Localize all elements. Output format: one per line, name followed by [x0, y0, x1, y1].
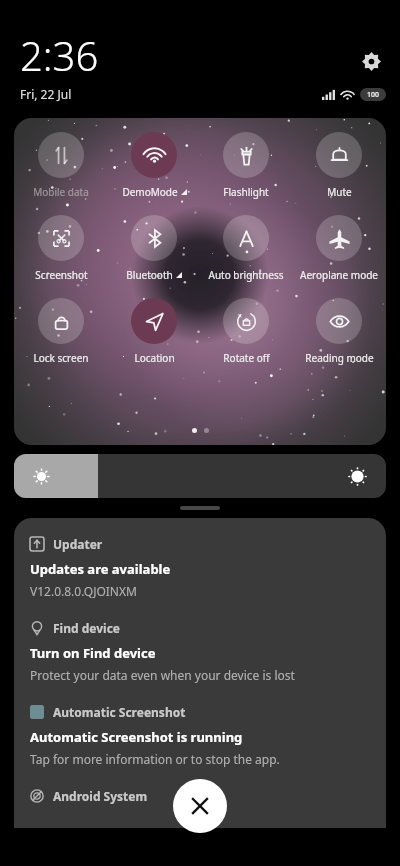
staticText: DemoMode: [122, 185, 178, 199]
button[interactable]: Mute: [294, 132, 384, 199]
button[interactable]: Auto brightness: [201, 215, 291, 282]
staticText: Find device: [53, 620, 120, 636]
button[interactable]: Close: [173, 779, 227, 833]
staticText: Automatic Screenshot: [53, 704, 186, 720]
button[interactable]: Reading mode: [294, 298, 384, 365]
staticText: Turn on Find device: [30, 644, 156, 662]
staticText: Rotate off: [223, 351, 270, 365]
staticText: Flashlight: [223, 185, 269, 199]
staticText: Tap for more information or to stop the …: [30, 751, 280, 767]
staticText: 2:36: [20, 28, 99, 82]
staticText: Aeroplane mode: [300, 268, 378, 282]
staticText: Android System: [53, 788, 148, 804]
staticText: Lock screen: [33, 351, 89, 365]
staticText: Automatic Screenshot is running: [30, 728, 243, 746]
button[interactable]: Android System: [30, 788, 370, 804]
staticText: Updates are available: [30, 560, 171, 578]
button[interactable]: Find device: [30, 620, 370, 636]
button[interactable]: Flashlight: [201, 132, 291, 199]
button[interactable]: Brightness: [14, 454, 386, 498]
staticText: Fri, 22 Jul: [20, 86, 72, 102]
button[interactable]: Automatic Screenshot: [30, 704, 370, 720]
button[interactable]: Screenshot: [16, 215, 106, 282]
staticText: Protect your data even when your device …: [30, 667, 295, 683]
staticText: Bluetooth: [126, 268, 173, 282]
staticText: Updater: [53, 536, 103, 552]
button[interactable]: Mobile data: [16, 132, 106, 199]
button[interactable]: Location: [109, 298, 199, 365]
staticText: Auto brightness: [208, 268, 284, 282]
staticText: Mute: [327, 185, 352, 199]
staticText: Location: [134, 351, 175, 365]
button[interactable]: Lock screen: [16, 298, 106, 365]
button[interactable]: DemoMode: [109, 132, 199, 199]
staticText: Reading mode: [305, 351, 374, 365]
staticText: Screenshot: [35, 268, 88, 282]
button[interactable]: Aeroplane mode: [294, 215, 384, 282]
staticText: V12.0.8.0.QJOINXM: [30, 583, 137, 599]
button[interactable]: Settings: [354, 44, 388, 78]
button[interactable]: Rotate off: [201, 298, 291, 365]
button[interactable]: Updater: [30, 536, 370, 552]
staticText: 100: [367, 90, 380, 100]
staticText: Mobile data: [33, 185, 89, 199]
button[interactable]: Bluetooth: [109, 215, 199, 282]
